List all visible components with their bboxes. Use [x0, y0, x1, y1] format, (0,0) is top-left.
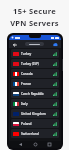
button[interactable]: Canada — [11, 69, 59, 78]
staticText: Poland — [21, 122, 32, 126]
button[interactable]: Recent apps — [47, 142, 52, 147]
staticText: United Kingdom — [21, 112, 46, 116]
staticText: Italy — [21, 102, 28, 106]
button[interactable]: Switzerland — [11, 129, 59, 138]
staticText: Czech Republic — [21, 92, 44, 96]
button[interactable]: United Kingdom — [11, 109, 59, 118]
staticText: Turkey (ISP) — [21, 62, 39, 66]
staticText: VPN Servers — [10, 18, 59, 28]
staticText: Switzerland — [21, 132, 39, 136]
button[interactable]: Turkey (ISP) — [11, 59, 59, 68]
button[interactable]: Search servers — [25, 42, 44, 46]
button[interactable]: Italy — [11, 99, 59, 108]
button[interactable]: Back — [18, 142, 23, 147]
button[interactable]: Home — [33, 142, 38, 147]
staticText: Canada — [21, 72, 33, 76]
button[interactable]: Turkey — [11, 49, 59, 58]
staticText: Turkey — [21, 52, 32, 56]
button[interactable]: Connect — [53, 42, 58, 47]
button[interactable]: Back — [12, 42, 17, 47]
button[interactable]: Czech Republic — [11, 89, 59, 98]
staticText: 15+ Secure — [13, 6, 56, 16]
button[interactable]: France — [11, 79, 59, 88]
staticText: France — [21, 82, 32, 86]
button[interactable]: Poland — [11, 119, 59, 128]
